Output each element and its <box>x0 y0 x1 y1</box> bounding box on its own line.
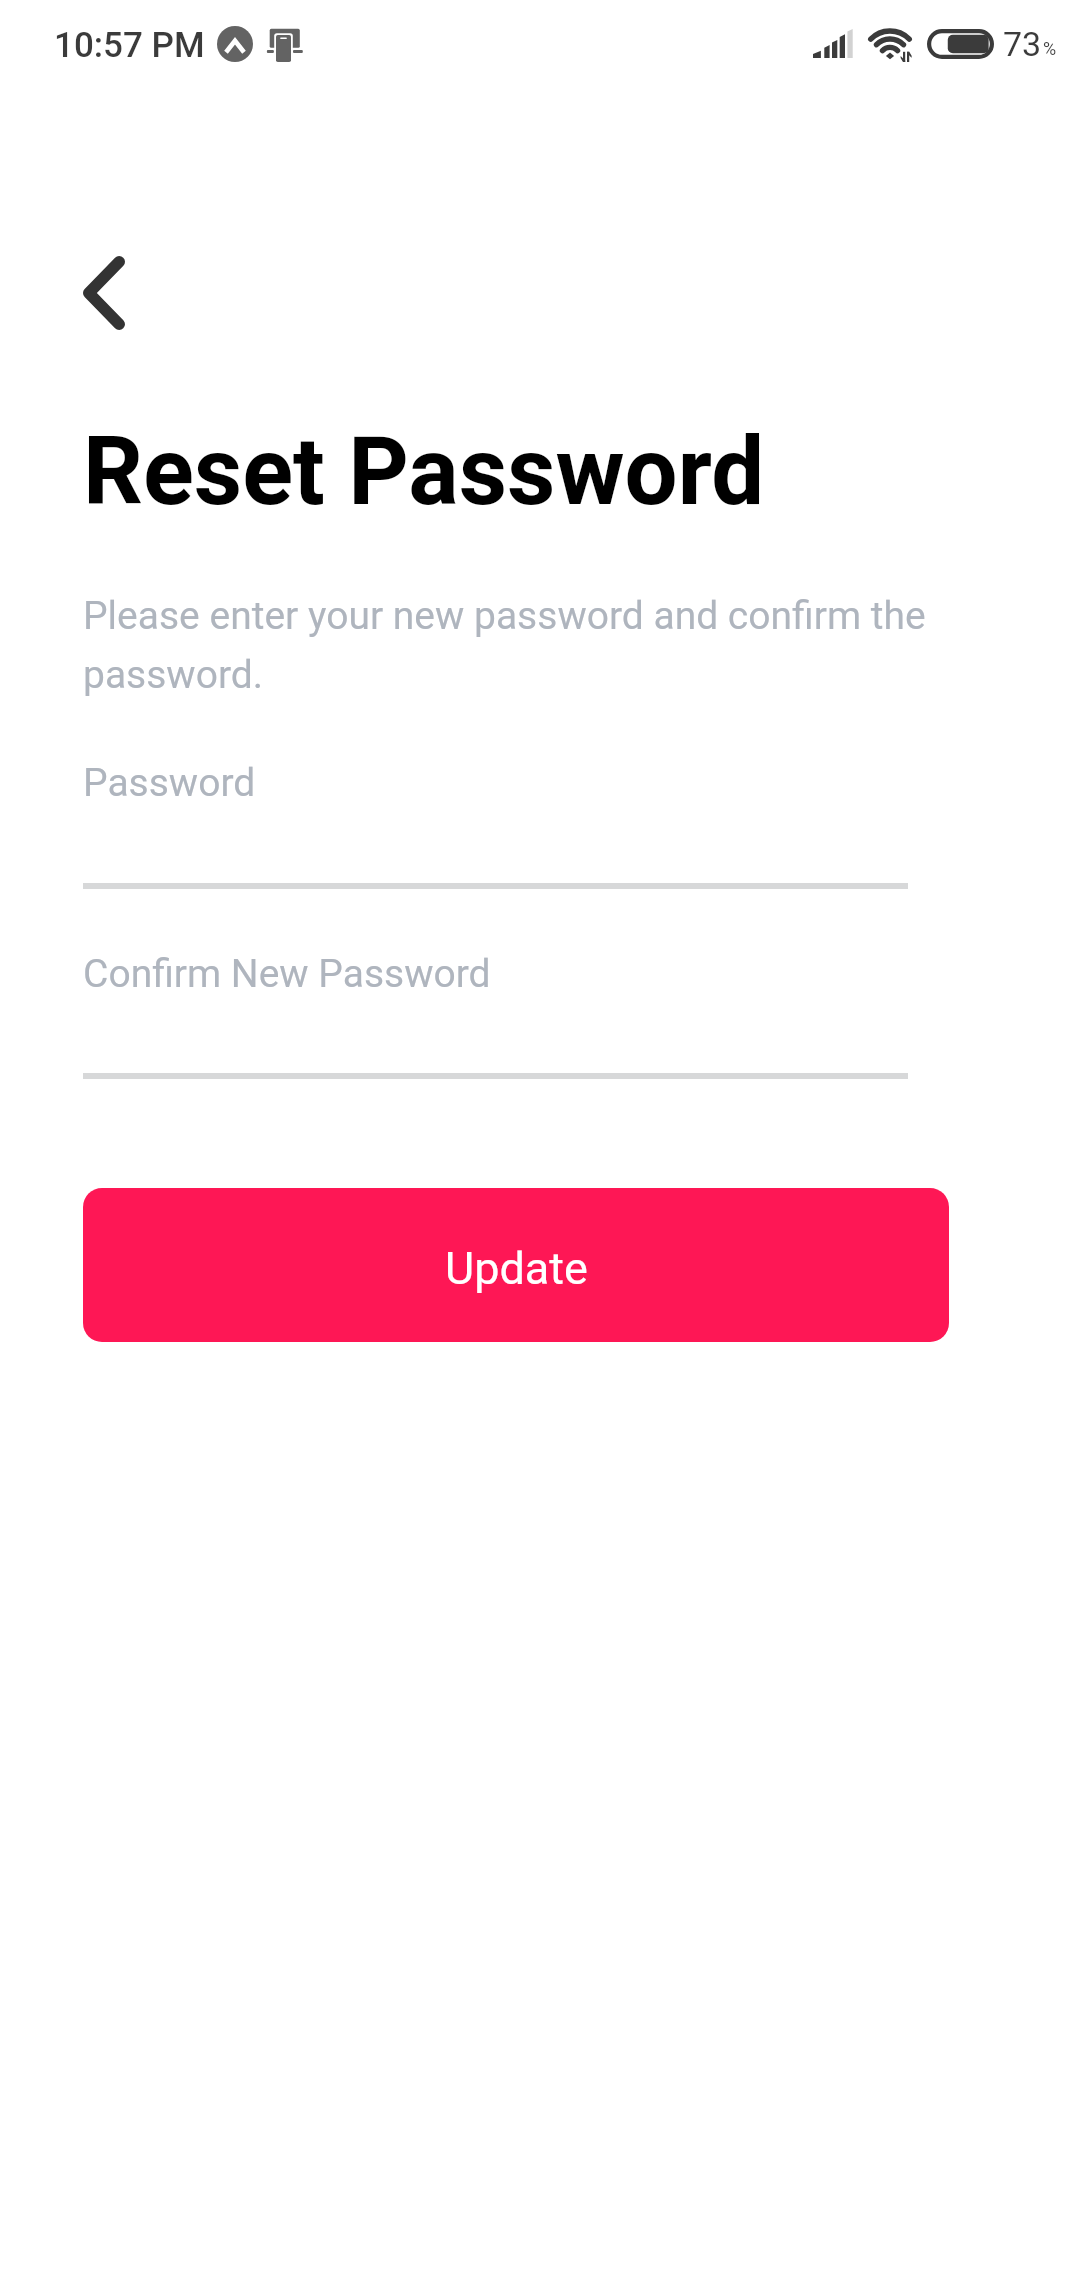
button[interactable]: Password <box>83 745 908 895</box>
staticText: Password <box>83 755 256 807</box>
button[interactable]: Confirm New Password <box>83 936 908 1086</box>
staticText: 10:57 PM <box>54 22 205 66</box>
button[interactable]: Update <box>83 1188 949 1342</box>
staticText: Confirm New Password <box>83 946 491 998</box>
staticText: 73 <box>1003 23 1042 65</box>
staticText: Update <box>445 1243 588 1295</box>
staticText: Reset Password <box>83 417 765 527</box>
button[interactable]: Back <box>44 213 164 373</box>
staticText: % <box>1043 36 1057 60</box>
staticText: Please enter your new password and confi… <box>83 583 1003 701</box>
